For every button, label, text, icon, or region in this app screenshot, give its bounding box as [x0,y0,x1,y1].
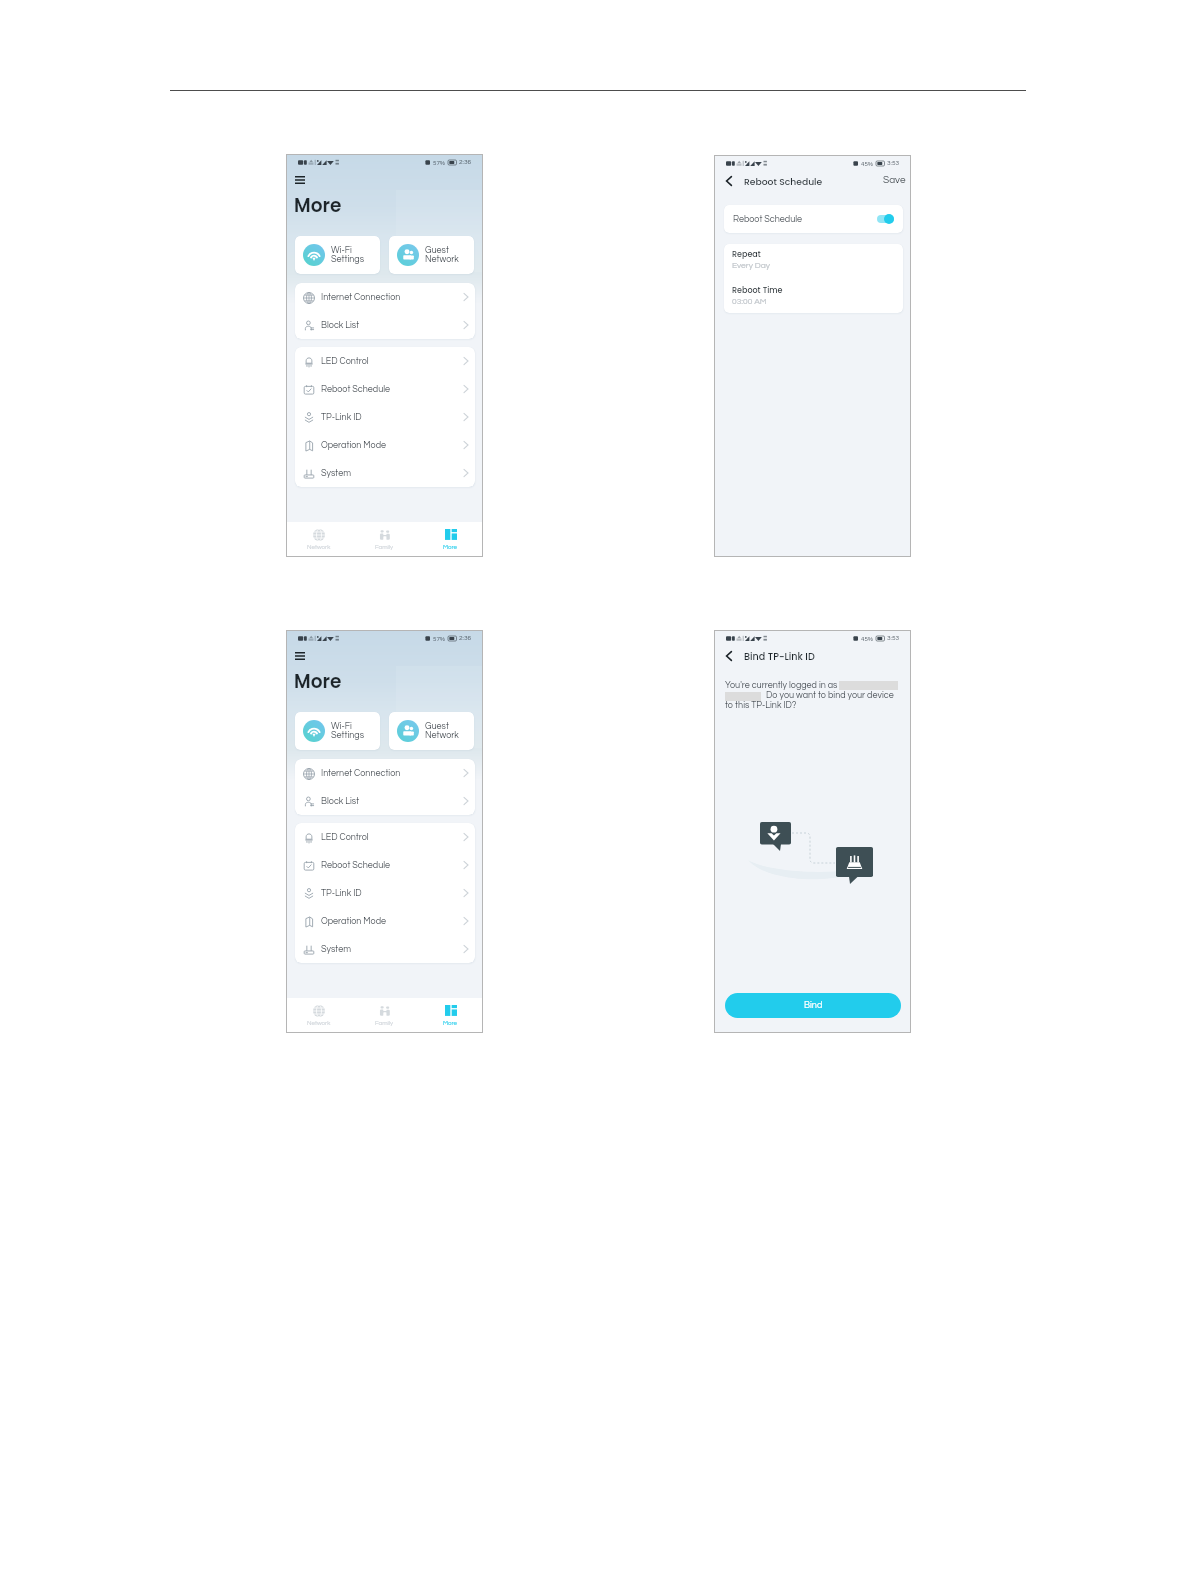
staticText: TP-Link ID [321,889,362,898]
button[interactable]: Save [883,175,906,185]
button[interactable]: Guest [389,712,474,750]
button[interactable]: Internet Connection [295,283,475,311]
button[interactable]: System [295,459,475,487]
staticText: Internet Connection [321,293,401,302]
button[interactable]: Reboot Schedule [724,205,903,233]
staticText: 57% [433,160,446,166]
staticText: Reboot Schedule [744,175,823,188]
staticText: 3:53 [887,635,900,642]
staticText: System [321,945,352,954]
staticText: Network [307,1020,331,1026]
staticText: Every Day [732,261,771,270]
staticText: Wi-Fi [331,246,352,255]
staticText: More [294,669,342,695]
button[interactable]: Menu [295,652,305,660]
button[interactable]: Guest [389,236,474,274]
staticText: Guest [425,722,449,731]
button[interactable]: Block List [295,787,475,815]
staticText: 57% [433,636,446,642]
staticText: Bind [804,1001,823,1010]
button[interactable]: LED Control [295,823,475,851]
staticText: Settings [331,731,365,740]
button[interactable]: More [417,522,483,556]
button[interactable]: Reboot Schedule [295,851,475,879]
button[interactable]: Operation Mode [295,907,475,935]
staticText: Internet Connection [321,769,401,778]
staticText: Save [883,175,906,185]
button[interactable]: Reboot schedule toggle [877,214,894,224]
staticText: System [321,469,352,478]
button[interactable]: Repeat [724,249,903,270]
staticText: More [443,1020,457,1026]
button[interactable]: System [295,935,475,963]
staticText: Family [375,1020,394,1026]
staticText: Block List [321,797,360,806]
button[interactable]: Bind [725,993,901,1018]
staticText: Network [425,731,459,740]
staticText: 2:36 [459,159,472,166]
button[interactable]: Wi-Fi [295,236,380,274]
button[interactable]: TP-Link ID [295,879,475,907]
staticText: Reboot Schedule [321,385,391,394]
staticText: Reboot Schedule [733,215,803,224]
staticText: 45% [861,161,874,167]
staticText: You're currently logged in as [725,681,838,690]
button[interactable]: Internet Connection [295,759,475,787]
staticText: Guest [425,246,449,255]
button[interactable]: TP-Link ID [295,403,475,431]
staticText: Network [425,255,459,264]
button[interactable]: Network [286,998,351,1032]
staticText: to this TP-Link ID? [725,701,797,710]
button[interactable]: LED Control [295,347,475,375]
staticText: Reboot Schedule [321,861,391,870]
staticText: 3:53 [887,160,900,167]
staticText: 45% [861,636,874,642]
staticText: Family [375,544,394,550]
staticText: LED Control [321,833,369,842]
button[interactable]: Reboot Schedule [295,375,475,403]
staticText: Operation Mode [321,917,387,926]
button[interactable]: Back [723,175,733,187]
button[interactable]: Operation Mode [295,431,475,459]
staticText: More [294,193,342,219]
button[interactable]: Wi-Fi [295,712,380,750]
staticText: TP-Link ID [321,413,362,422]
button[interactable]: Back [723,650,733,662]
button[interactable]: Network [286,522,351,556]
staticText: Operation Mode [321,441,387,450]
staticText: Block List [321,321,360,330]
staticText: 03:00 AM [732,297,767,306]
staticText: Network [307,544,331,550]
staticText: Repeat [732,249,761,260]
staticText: Do you want to bind your device [766,691,894,700]
button[interactable]: Family [351,998,417,1032]
button[interactable]: More [417,998,483,1032]
staticText: LED Control [321,357,369,366]
staticText: Bind TP-Link ID [744,650,815,663]
button[interactable]: Block List [295,311,475,339]
staticText: 2:36 [459,635,472,642]
staticText: Wi-Fi [331,722,352,731]
staticText: Reboot Time [732,285,783,296]
staticText: Settings [331,255,365,264]
button[interactable]: Family [351,522,417,556]
staticText: More [443,544,457,550]
button[interactable]: Reboot Time [724,285,903,306]
button[interactable]: Menu [295,176,305,184]
